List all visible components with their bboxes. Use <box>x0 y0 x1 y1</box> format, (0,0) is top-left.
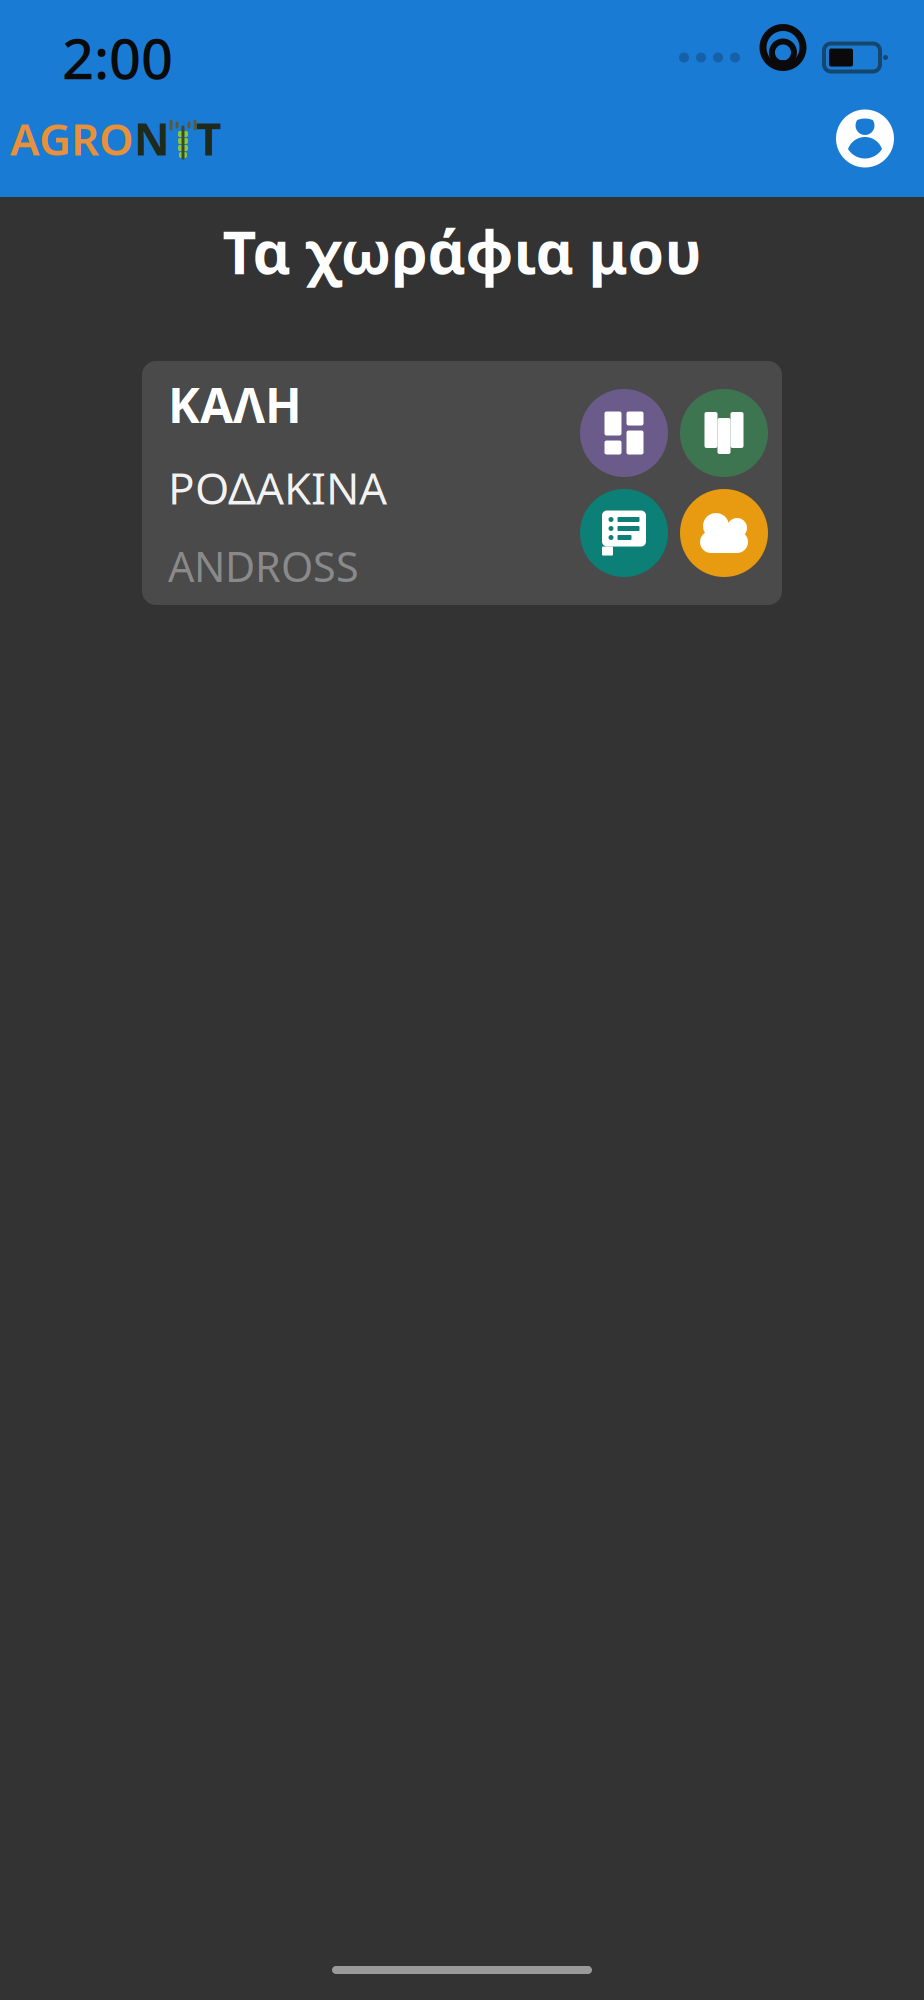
button[interactable]: Account <box>834 107 896 169</box>
button[interactable]: Map <box>680 389 768 477</box>
staticText: 2:00 <box>62 20 173 95</box>
staticText: ΚΑΛΗ <box>168 372 302 436</box>
button[interactable]: Dashboard <box>580 389 668 477</box>
staticText: T <box>196 109 221 168</box>
staticText: Τα χωράφια μου <box>222 212 701 290</box>
button[interactable]: Weather <box>680 489 768 577</box>
button[interactable]: ΚΑΛΗ <box>142 361 782 605</box>
staticText: AGRO <box>10 109 134 168</box>
staticText: ANDROSS <box>168 539 359 593</box>
button[interactable]: Notes <box>580 489 668 577</box>
staticText: N <box>134 109 170 168</box>
staticText: ΡΟΔΑΚΙΝΑ <box>168 458 387 517</box>
